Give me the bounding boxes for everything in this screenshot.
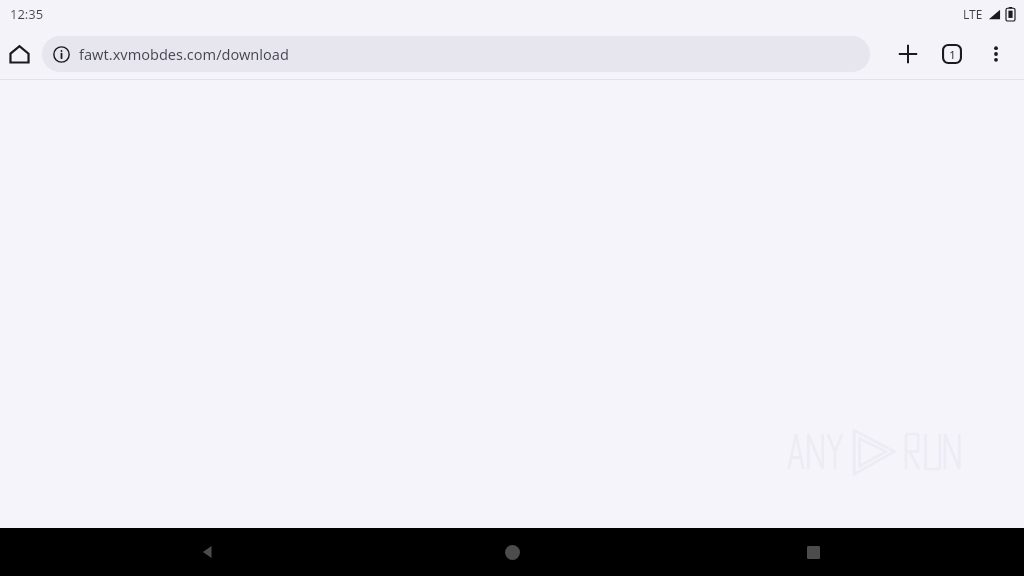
button[interactable]: Back: [186, 530, 230, 574]
button[interactable]: Home: [1, 36, 37, 72]
button[interactable]: Recent apps: [791, 530, 835, 574]
staticText: LTE: [963, 6, 983, 22]
staticText: 1: [949, 47, 956, 62]
staticText: fawt.xvmobdes.com/download: [79, 44, 289, 64]
button[interactable]: More options: [974, 32, 1018, 76]
button[interactable]: Home: [490, 530, 534, 574]
staticText: 12:35: [10, 5, 44, 23]
button[interactable]: fawt.xvmobdes.com/download: [42, 36, 870, 72]
button[interactable]: New tab: [886, 32, 930, 76]
button[interactable]: Switch tabs, 1 tab: [930, 32, 974, 76]
